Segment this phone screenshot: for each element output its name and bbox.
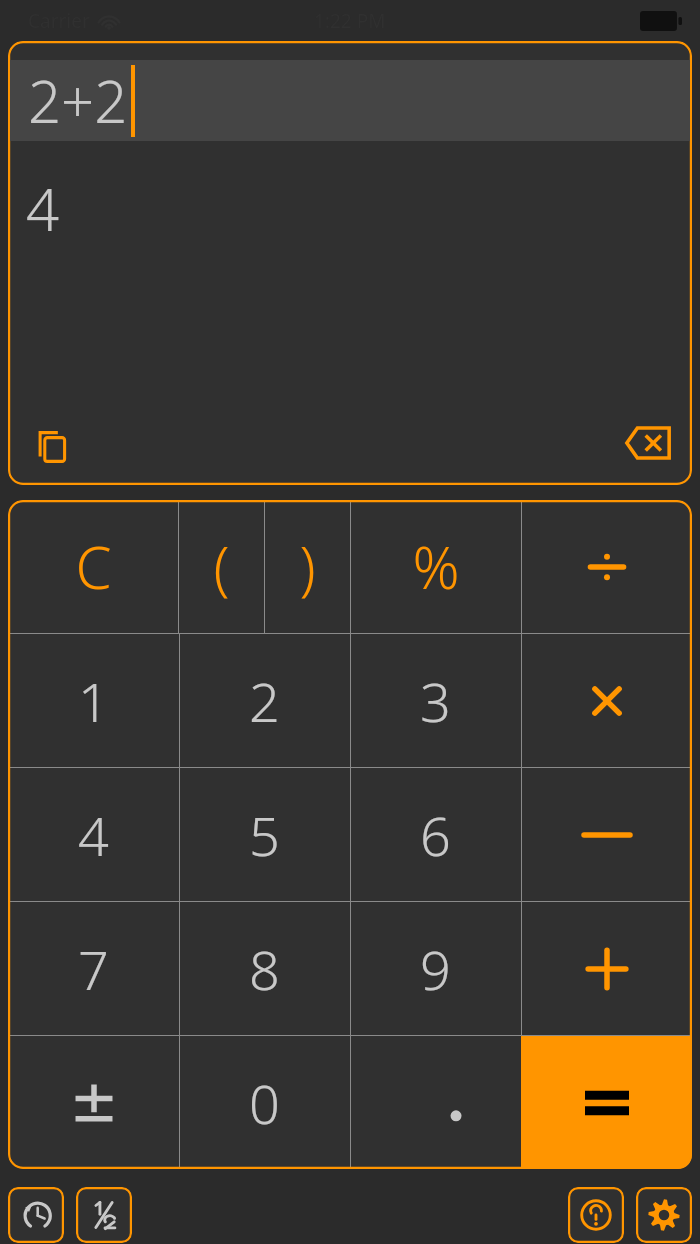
button[interactable]: 0 xyxy=(179,1036,350,1169)
button[interactable]: C xyxy=(8,500,178,633)
staticText: 5 xyxy=(249,798,280,872)
button[interactable]: 7 xyxy=(8,902,179,1035)
button[interactable]: Add xyxy=(521,902,692,1035)
button[interactable]: 4 xyxy=(8,768,179,901)
button[interactable]: 1 xyxy=(8,634,179,767)
button[interactable]: 2+2 xyxy=(10,60,690,141)
staticText: 2 xyxy=(249,664,280,738)
button[interactable]: Backspace xyxy=(622,417,674,469)
button[interactable]: Plus minus xyxy=(8,1036,179,1169)
staticText: 6 xyxy=(420,798,451,872)
button[interactable]: Decimal point xyxy=(350,1036,521,1169)
staticText: ( xyxy=(213,527,230,606)
button[interactable]: 8 xyxy=(179,902,350,1035)
staticText: 4 xyxy=(78,798,109,872)
button[interactable]: Help xyxy=(568,1187,624,1243)
staticText: 4 xyxy=(26,169,60,248)
staticText: 3 xyxy=(420,664,451,738)
button[interactable]: 2 xyxy=(179,634,350,767)
staticText: 7 xyxy=(78,932,109,1006)
button[interactable]: Copy xyxy=(28,423,76,471)
button[interactable]: Divide xyxy=(521,500,692,633)
staticText: C xyxy=(75,527,112,606)
staticText: % xyxy=(412,527,460,606)
button[interactable]: 6 xyxy=(350,768,521,901)
button[interactable]: Fractions xyxy=(76,1187,132,1243)
button[interactable]: ( xyxy=(178,500,264,633)
button[interactable]: % xyxy=(350,500,521,633)
button[interactable]: Multiply xyxy=(521,634,692,767)
button[interactable]: Subtract xyxy=(521,768,692,901)
staticText: 8 xyxy=(249,932,280,1006)
button[interactable]: ) xyxy=(264,500,350,633)
staticText: 0 xyxy=(249,1066,280,1140)
button[interactable]: 5 xyxy=(179,768,350,901)
button[interactable]: 9 xyxy=(350,902,521,1035)
staticText: 9 xyxy=(420,932,451,1006)
button[interactable]: Settings xyxy=(636,1187,692,1243)
button[interactable]: Equals xyxy=(521,1036,692,1169)
staticText: ) xyxy=(299,527,316,606)
staticText: 2+2 xyxy=(28,61,128,140)
staticText: 1 xyxy=(78,664,109,738)
button[interactable]: History xyxy=(8,1187,64,1243)
button[interactable]: 3 xyxy=(350,634,521,767)
